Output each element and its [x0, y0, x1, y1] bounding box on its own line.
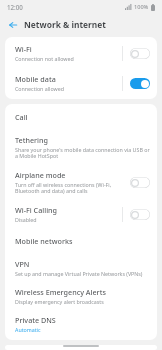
button[interactable]: Airplane mode [5, 165, 157, 200]
button[interactable]: Turn off [130, 78, 150, 89]
staticText: Airplane mode [15, 170, 66, 180]
staticText: Connection allowed [15, 85, 64, 92]
button[interactable]: Wi-Fi Calling [5, 200, 157, 228]
button[interactable]: Turn on [130, 209, 150, 220]
staticText: Automatic [15, 326, 41, 333]
staticText: Disabled [15, 216, 37, 223]
staticText: Turn off all wireless connections (Wi-Fi… [15, 181, 126, 195]
button[interactable]: Tethering [5, 130, 157, 165]
button[interactable]: Call [5, 104, 157, 130]
button[interactable]: Turn on [130, 48, 150, 59]
staticText: Wireless Emergency Alerts [15, 287, 106, 297]
button[interactable]: Wireless Emergency Alerts [5, 282, 157, 310]
staticText: Display emergency alert broadcasts [15, 298, 104, 305]
staticText: Set up and manage Virtual Private Networ… [15, 270, 143, 277]
staticText: 100% [134, 3, 149, 11]
staticText: Mobile data [15, 74, 56, 84]
staticText: 12:00 [7, 3, 23, 11]
button[interactable]: Wi-Fi [5, 37, 157, 68]
staticText: Wi-Fi Calling [15, 205, 58, 215]
button[interactable]: Mobile networks [5, 228, 157, 254]
staticText: Tethering [15, 135, 48, 145]
button[interactable]: Back [5, 17, 20, 32]
staticText: Private DNS [15, 315, 56, 325]
staticText: VPN [15, 259, 30, 269]
button[interactable]: Turn on [130, 177, 150, 188]
staticText: Wi-Fi [15, 44, 32, 54]
staticText: Mobile networks [15, 236, 73, 246]
staticText: Network & internet [24, 19, 106, 30]
staticText: Connection not allowed [15, 55, 74, 62]
button[interactable]: VPN [5, 254, 157, 282]
staticText: Share your phone's mobile data connectio… [15, 146, 150, 160]
button[interactable]: Private DNS [5, 310, 157, 340]
staticText: Call [15, 112, 28, 122]
button[interactable]: Mobile data [5, 68, 157, 99]
